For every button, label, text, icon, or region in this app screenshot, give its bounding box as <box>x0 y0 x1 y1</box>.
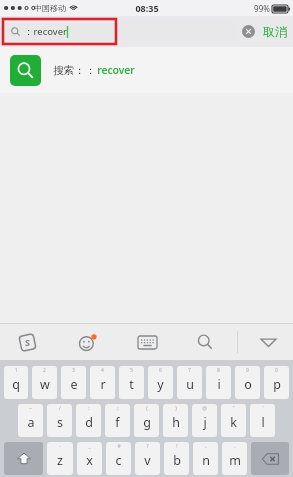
button[interactable]: 取消 <box>262 22 288 41</box>
button[interactable]: : <box>76 404 101 437</box>
staticText: d <box>85 414 93 431</box>
staticText: n <box>202 452 210 469</box>
staticText: ~ <box>29 405 32 412</box>
button[interactable]: Keyboard layout <box>133 328 161 356</box>
button[interactable]: 8 <box>206 366 231 399</box>
button[interactable]: Hide keyboard <box>251 328 285 356</box>
staticText: ) <box>175 405 177 412</box>
staticText: 取消 <box>263 24 287 39</box>
button[interactable]: 5 <box>119 366 144 399</box>
staticText: . <box>234 443 236 450</box>
button[interactable]: ; <box>105 404 130 437</box>
staticText: m <box>229 452 241 469</box>
button[interactable]: - <box>47 442 73 475</box>
staticText: q <box>12 376 20 393</box>
staticText: p <box>273 376 281 393</box>
staticText: ; <box>117 405 119 412</box>
button[interactable]: . <box>222 442 247 475</box>
staticText: 4 <box>101 367 104 374</box>
staticText: 中国移动 <box>34 3 66 13</box>
staticText: x <box>86 452 93 469</box>
staticText: y <box>157 376 164 393</box>
staticText: 08:35 <box>135 2 159 14</box>
staticText: recover <box>97 63 135 77</box>
button[interactable]: Delete <box>251 442 289 475</box>
staticText: 8 <box>217 367 220 374</box>
staticText: _ <box>88 443 91 450</box>
button[interactable]: Shift <box>4 442 43 475</box>
button[interactable]: Emoji <box>73 328 101 356</box>
button[interactable]: 2 <box>32 366 57 399</box>
button[interactable]: 9 <box>235 366 260 399</box>
staticText: h <box>172 414 180 431</box>
button[interactable]: ! <box>164 442 189 475</box>
button[interactable]: ( <box>134 404 159 437</box>
staticText: c <box>115 452 122 469</box>
staticText: k <box>230 414 237 431</box>
button[interactable]: Clear text <box>242 25 255 38</box>
button[interactable]: , <box>193 442 218 475</box>
staticText: a <box>27 414 35 431</box>
button[interactable]: 7 <box>177 366 202 399</box>
button[interactable]: # <box>106 442 131 475</box>
staticText: ： <box>85 64 96 77</box>
staticText: 3 <box>72 367 75 374</box>
button[interactable]: 1 <box>4 366 28 399</box>
staticText: r <box>100 376 106 393</box>
staticText: e <box>70 376 78 393</box>
staticText: 5 <box>130 367 133 374</box>
staticText: S <box>25 336 30 348</box>
button[interactable]: ~ <box>18 404 43 437</box>
button[interactable]: ' <box>250 404 275 437</box>
staticText: ! <box>176 443 178 450</box>
staticText: 0 <box>275 367 278 374</box>
button[interactable]: ? <box>135 442 160 475</box>
staticText: , <box>205 443 207 450</box>
button[interactable]: 4 <box>90 366 115 399</box>
staticText: 6 <box>159 367 162 374</box>
button[interactable]: / <box>47 404 72 437</box>
staticText: v <box>144 452 151 469</box>
button[interactable]: " <box>221 404 246 437</box>
button[interactable]: @ <box>192 404 217 437</box>
staticText: f <box>115 414 120 431</box>
staticText: ( <box>146 405 148 412</box>
staticText: 搜索： <box>53 64 85 77</box>
staticText: z <box>57 452 63 469</box>
staticText: 7 <box>188 367 191 374</box>
staticText: 99% <box>254 3 270 14</box>
staticText: u <box>186 376 194 393</box>
staticText: b <box>173 452 181 469</box>
button[interactable]: ) <box>163 404 188 437</box>
button[interactable]: 3 <box>61 366 86 399</box>
button[interactable]: _ <box>77 442 102 475</box>
staticText: t <box>129 376 134 393</box>
button[interactable]: 6 <box>148 366 173 399</box>
button[interactable]: Search <box>191 328 219 356</box>
staticText: s <box>57 414 63 431</box>
staticText: # <box>117 443 121 450</box>
button[interactable]: 搜索： <box>0 47 293 93</box>
staticText: o <box>244 376 252 393</box>
button[interactable]: 0 <box>264 366 289 399</box>
staticText: ' <box>262 405 264 412</box>
staticText: ：recover <box>24 25 67 38</box>
button[interactable]: ：recover <box>5 21 236 42</box>
staticText: j <box>203 414 207 431</box>
staticText: - <box>59 443 61 450</box>
button[interactable]: Sogou input <box>13 328 41 356</box>
staticText: w <box>40 376 50 393</box>
staticText: 1 <box>15 367 18 374</box>
staticText: / <box>59 405 61 412</box>
staticText: ? <box>146 443 149 450</box>
staticText: g <box>143 414 151 431</box>
staticText: 2 <box>43 367 46 374</box>
staticText: @ <box>202 405 207 412</box>
staticText: i <box>217 376 221 393</box>
staticText: " <box>232 405 235 412</box>
staticText: 9 <box>246 367 249 374</box>
staticText: l <box>261 414 265 431</box>
staticText: : <box>88 405 90 412</box>
